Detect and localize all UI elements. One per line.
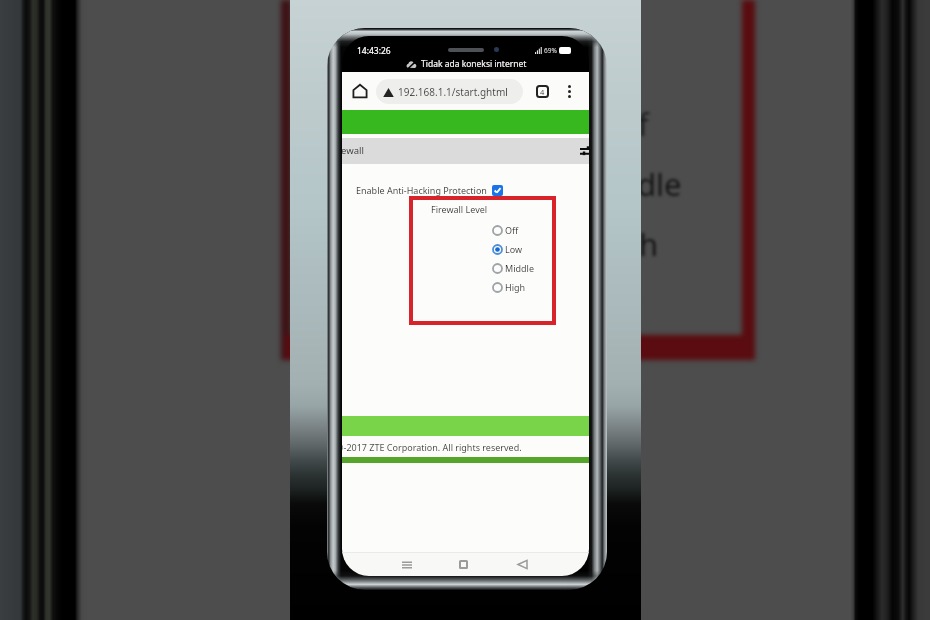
staticText: Low bbox=[505, 243, 523, 255]
button[interactable]: Home bbox=[348, 79, 372, 103]
button[interactable]: Low bbox=[492, 241, 523, 257]
button[interactable] bbox=[492, 185, 503, 196]
button[interactable]: Recents bbox=[395, 553, 418, 576]
staticText: ©-2017 ZTE Corporation. All rights reser… bbox=[342, 441, 522, 453]
button[interactable]: Tabs bbox=[531, 80, 553, 102]
staticText: 69% bbox=[544, 46, 557, 55]
button[interactable]: Home bbox=[452, 553, 475, 576]
button[interactable]: Off bbox=[492, 222, 519, 238]
staticText: h bbox=[639, 223, 659, 265]
button[interactable]: Middle bbox=[492, 260, 534, 276]
staticText: Enable Anti-Hacking Protection bbox=[356, 184, 487, 196]
staticText: 4 bbox=[540, 87, 545, 97]
button[interactable]: High bbox=[492, 279, 526, 295]
staticText: Off bbox=[505, 224, 519, 236]
button[interactable]: More options bbox=[558, 80, 580, 102]
staticText: ewall bbox=[342, 144, 364, 157]
staticText: dle bbox=[637, 163, 682, 205]
staticText: Middle bbox=[505, 262, 534, 274]
staticText: High bbox=[505, 281, 526, 293]
staticText: Tidak ada koneksi internet bbox=[421, 58, 527, 70]
button[interactable]: Firewall Level bbox=[409, 196, 556, 325]
staticText: 192.168.1.1/start.ghtml bbox=[398, 85, 508, 99]
staticText: Firewall Level bbox=[431, 203, 488, 215]
button[interactable]: Back bbox=[511, 553, 534, 576]
staticText: f bbox=[638, 103, 649, 145]
button[interactable]: 192.168.1.1/start.ghtml bbox=[376, 79, 523, 104]
staticText: 14:43:26 bbox=[357, 45, 391, 57]
